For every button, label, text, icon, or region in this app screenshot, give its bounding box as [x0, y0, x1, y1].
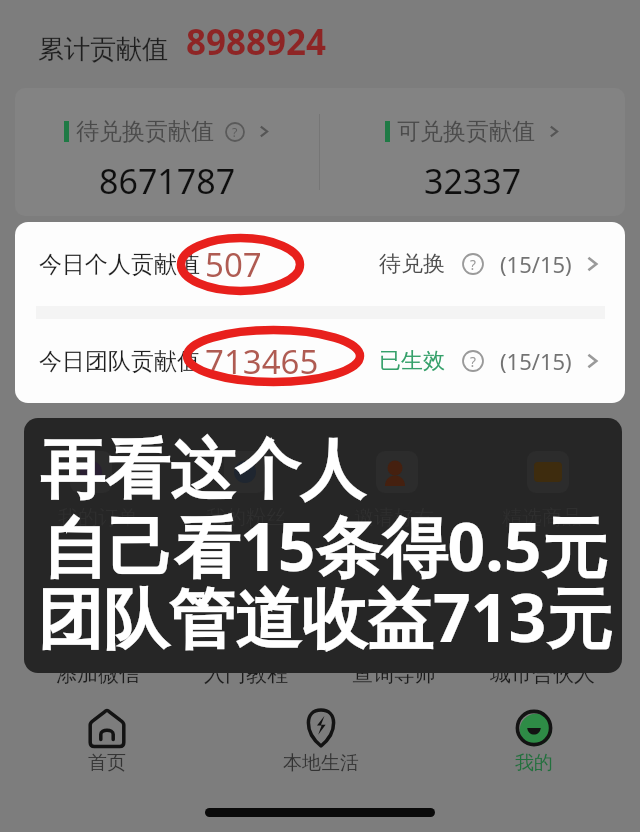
staticText: 待兑换: [379, 250, 445, 278]
other: Help: [462, 253, 484, 275]
button[interactable]: 可兑换贡献值: [320, 88, 625, 216]
staticText: 今日团队贡献值: [39, 347, 200, 376]
staticText: 507: [205, 242, 262, 287]
button[interactable]: 我的: [427, 708, 640, 775]
staticText: 可兑换贡献值: [397, 117, 535, 146]
staticText: 添加微信: [56, 661, 140, 687]
other: 首页: [87, 708, 127, 748]
other: 我的: [514, 708, 554, 748]
staticText: 本地生活: [283, 751, 359, 775]
staticText: 邀请好友: [354, 505, 434, 530]
other: 本地生活: [301, 708, 341, 748]
button[interactable]: 首页: [0, 708, 214, 775]
other: Help: [462, 350, 484, 372]
staticText: 城市合伙人: [490, 661, 595, 687]
staticText: (15/15): [500, 249, 572, 279]
button[interactable]: 今日团队贡献值: [15, 319, 625, 403]
button[interactable]: 入门教程: [172, 661, 320, 687]
staticText: 今日个人贡献值: [39, 250, 200, 279]
button[interactable]: 本地生活: [214, 708, 427, 775]
staticText: 713465: [205, 339, 319, 384]
staticText: 查询导师: [352, 661, 436, 687]
staticText: ?: [470, 352, 476, 371]
staticText: 团队管道收益713元: [37, 571, 613, 661]
staticText: 累计贡献值: [38, 33, 168, 66]
staticText: 已生效: [379, 347, 445, 375]
button[interactable]: 待兑换贡献值: [15, 88, 319, 216]
staticText: (15/15): [500, 346, 572, 376]
staticText: 精选商品: [502, 505, 582, 530]
staticText: 32337: [424, 158, 522, 204]
staticText: 再看这个人: [40, 429, 365, 511]
staticText: 待兑换贡献值: [76, 117, 214, 146]
staticText: 8988924: [186, 18, 327, 66]
staticText: 入门教程: [204, 661, 288, 687]
staticText: ?: [232, 124, 238, 141]
button[interactable]: 城市合伙人: [468, 661, 616, 687]
staticText: 我的: [515, 751, 553, 775]
button[interactable]: 添加微信: [24, 661, 172, 687]
button[interactable]: 查询导师: [320, 661, 468, 687]
staticText: 8671787: [99, 158, 236, 204]
staticText: 我的粉丝: [206, 505, 286, 530]
button[interactable]: 今日个人贡献值: [15, 222, 625, 306]
other: Help: [225, 122, 245, 142]
staticText: ?: [470, 255, 476, 274]
staticText: 我的订单: [58, 505, 138, 530]
staticText: 自己看15条得0.5元: [42, 500, 608, 590]
staticText: 首页: [88, 751, 126, 775]
